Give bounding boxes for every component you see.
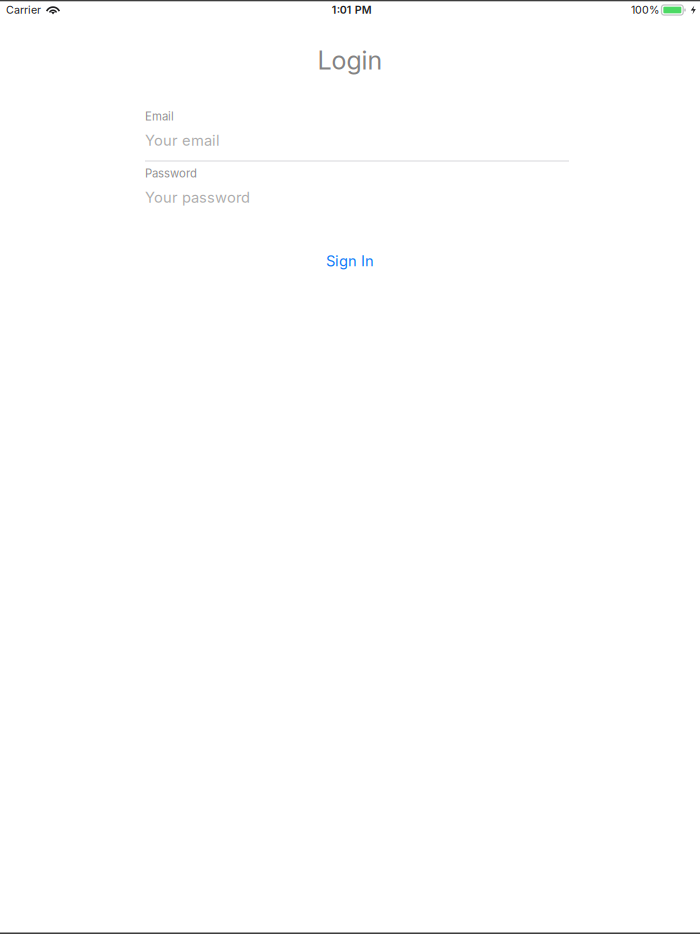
staticText: Email — [145, 109, 174, 123]
staticText: Your email — [145, 131, 220, 149]
staticText: Your password — [145, 188, 250, 206]
staticText: Carrier — [6, 3, 41, 16]
staticText: Sign In — [326, 252, 374, 270]
staticText: Password — [145, 166, 197, 180]
button[interactable]: Password — [145, 166, 569, 218]
staticText: 100% — [631, 3, 659, 16]
button[interactable]: Sign In — [0, 252, 700, 269]
button[interactable]: Email — [145, 109, 569, 161]
staticText: 1:01 PM — [332, 3, 372, 16]
staticText: Login — [317, 45, 382, 76]
